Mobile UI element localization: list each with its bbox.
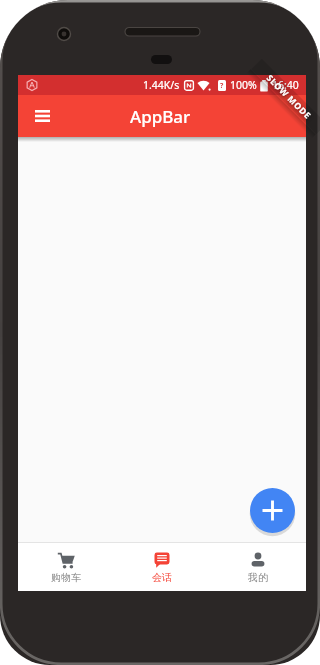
staticText: SLOW MODE [264,72,314,122]
button[interactable]: 购物车 [18,543,114,591]
button[interactable]: 会话 [114,543,210,591]
button[interactable] [30,104,54,128]
staticText: 100% [230,78,257,92]
staticText: AppBar [130,105,191,128]
staticText: ? [220,81,224,91]
staticText: 购物车 [51,571,81,584]
staticText: 16:40 [272,78,299,92]
staticText: 我的 [248,571,268,584]
staticText: 1.44K/s [143,78,180,92]
button[interactable]: 我的 [210,543,306,591]
staticText: 会话 [152,571,172,584]
button[interactable] [250,488,295,533]
